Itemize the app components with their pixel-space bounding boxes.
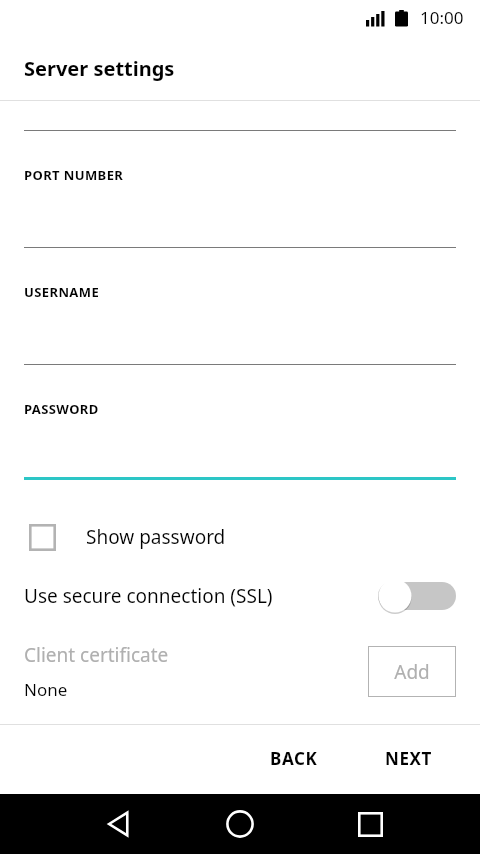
staticText: Client certificate	[24, 642, 169, 668]
button[interactable]: Port number	[24, 131, 456, 247]
button[interactable]: NEXT	[360, 733, 456, 783]
other: Use secure connection (SSL) toggle	[375, 579, 457, 613]
staticText: NEXT	[385, 747, 432, 770]
button[interactable]: Use secure connection (SSL)	[0, 570, 480, 622]
button[interactable]: Password	[24, 365, 456, 477]
button[interactable]: Username	[24, 248, 456, 364]
button[interactable]: Home	[204, 794, 276, 854]
button[interactable]: BACK	[246, 733, 342, 783]
staticText: PORT NUMBER	[24, 166, 124, 184]
button[interactable]: Add	[368, 646, 456, 697]
staticText: PASSWORD	[24, 400, 99, 418]
staticText: USERNAME	[24, 283, 100, 301]
staticText: Add	[394, 659, 430, 685]
staticText: 10:00	[420, 6, 464, 29]
staticText: BACK	[270, 747, 318, 770]
button[interactable]: Client certificate	[0, 632, 480, 716]
button[interactable]: Show password	[0, 513, 480, 561]
staticText: Use secure connection (SSL)	[24, 583, 273, 609]
staticText: Server settings	[24, 55, 175, 82]
staticText: None	[24, 678, 68, 701]
button[interactable]: Recent apps	[334, 794, 406, 854]
staticText: Show password	[86, 524, 226, 550]
button[interactable]: Back	[84, 794, 156, 854]
